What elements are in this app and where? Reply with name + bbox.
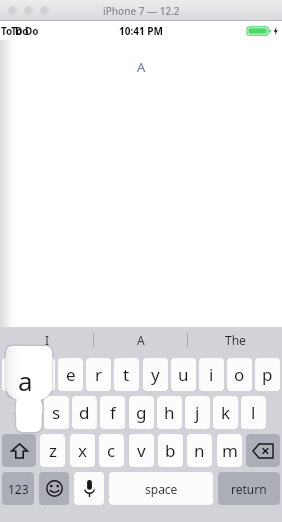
staticText: s bbox=[52, 401, 61, 424]
button[interactable]: v bbox=[129, 434, 154, 467]
staticText: x bbox=[78, 439, 87, 462]
button[interactable]: i bbox=[199, 358, 224, 391]
button[interactable]: w bbox=[30, 358, 55, 391]
button[interactable]: Dictation bbox=[74, 472, 104, 505]
staticText: 123 bbox=[8, 481, 29, 497]
button[interactable]: a bbox=[16, 396, 41, 429]
button[interactable]: Close window bbox=[8, 6, 17, 15]
staticText: To Do bbox=[11, 24, 39, 38]
button[interactable]: I bbox=[0, 327, 94, 353]
staticText: r bbox=[95, 363, 103, 386]
staticText: To Do bbox=[1, 24, 29, 38]
button[interactable]: u bbox=[171, 358, 196, 391]
button[interactable]: s bbox=[44, 396, 69, 429]
button[interactable]: Zoom window bbox=[40, 6, 49, 15]
staticText: m bbox=[222, 439, 238, 462]
button[interactable]: r bbox=[86, 358, 111, 391]
button[interactable]: m bbox=[217, 434, 242, 467]
button[interactable]: p bbox=[255, 358, 280, 391]
button[interactable]: Minimize window bbox=[24, 6, 33, 15]
button[interactable]: Emoji bbox=[39, 472, 69, 505]
staticText: t bbox=[123, 363, 130, 386]
button[interactable]: Delete bbox=[246, 434, 280, 467]
staticText: v bbox=[137, 439, 146, 462]
staticText: f bbox=[110, 401, 116, 424]
staticText: q bbox=[9, 363, 20, 386]
button[interactable]: t bbox=[114, 358, 139, 391]
staticText: The bbox=[225, 332, 246, 348]
staticText: A bbox=[137, 58, 146, 76]
button[interactable]: space bbox=[109, 472, 213, 505]
button[interactable]: Shift bbox=[2, 434, 36, 467]
button[interactable]: h bbox=[157, 396, 182, 429]
staticText: d bbox=[79, 401, 90, 424]
button[interactable]: o bbox=[227, 358, 252, 391]
staticText: b bbox=[165, 439, 176, 462]
staticText: n bbox=[194, 439, 205, 462]
staticText: space bbox=[145, 481, 178, 497]
staticText: I bbox=[45, 332, 50, 348]
staticText: g bbox=[136, 401, 147, 424]
button[interactable]: y bbox=[143, 358, 168, 391]
staticText: j bbox=[195, 401, 200, 424]
staticText: z bbox=[49, 439, 57, 462]
button[interactable]: 123 bbox=[2, 472, 34, 505]
staticText: 10:41 PM bbox=[119, 24, 163, 38]
button[interactable]: j bbox=[185, 396, 210, 429]
staticText: p bbox=[262, 363, 273, 386]
button[interactable]: d bbox=[72, 396, 97, 429]
staticText: iPhone 7 — 12.2 bbox=[103, 4, 180, 18]
staticText: y bbox=[151, 363, 160, 386]
button[interactable]: l bbox=[241, 396, 266, 429]
staticText: o bbox=[234, 363, 245, 386]
button[interactable]: z bbox=[40, 434, 65, 467]
staticText: c bbox=[107, 439, 116, 462]
staticText: l bbox=[251, 401, 256, 424]
button[interactable]: e bbox=[58, 358, 83, 391]
button[interactable]: b bbox=[158, 434, 183, 467]
staticText: k bbox=[221, 401, 231, 424]
button[interactable]: The bbox=[188, 327, 282, 353]
staticText: i bbox=[209, 363, 214, 386]
staticText: return bbox=[231, 481, 267, 497]
button[interactable]: return bbox=[218, 472, 280, 505]
button[interactable]: k bbox=[213, 396, 238, 429]
button[interactable]: n bbox=[187, 434, 212, 467]
button[interactable]: f bbox=[100, 396, 125, 429]
button[interactable]: A bbox=[94, 327, 188, 353]
staticText: e bbox=[66, 363, 76, 386]
button[interactable]: q bbox=[2, 358, 27, 391]
staticText: A bbox=[137, 332, 145, 348]
button[interactable]: g bbox=[129, 396, 154, 429]
button[interactable]: c bbox=[99, 434, 124, 467]
staticText: u bbox=[178, 363, 189, 386]
staticText: h bbox=[164, 401, 175, 424]
staticText: a bbox=[18, 363, 33, 398]
button[interactable]: x bbox=[70, 434, 95, 467]
